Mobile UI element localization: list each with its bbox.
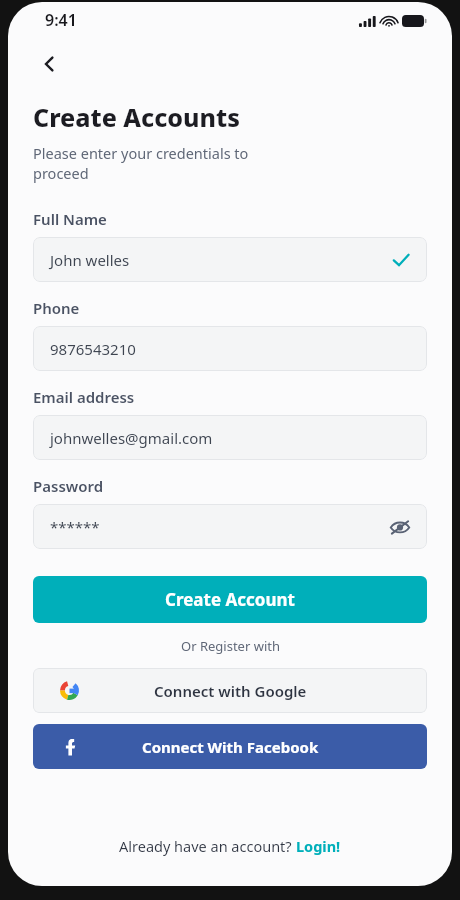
- button[interactable]: 9876543210: [33, 326, 427, 371]
- staticText: Already have an account?: [119, 836, 296, 856]
- staticText: Full Name: [33, 209, 107, 229]
- staticText: johnwelles@gmail.com: [50, 428, 213, 448]
- staticText: Or Register with: [181, 637, 280, 655]
- staticText: Phone: [33, 298, 80, 318]
- button[interactable]: johnwelles@gmail.com: [33, 415, 427, 460]
- staticText: Login!: [296, 836, 341, 856]
- button[interactable]: John welles: [33, 237, 427, 282]
- button[interactable]: ******: [33, 504, 427, 549]
- button[interactable]: Connect with Google: [33, 668, 427, 713]
- staticText: 9876543210: [50, 339, 136, 359]
- button[interactable]: Back: [28, 42, 72, 86]
- button[interactable]: Connect With Facebook: [33, 724, 427, 769]
- staticText: Email address: [33, 387, 135, 407]
- staticText: 9:41: [45, 9, 77, 31]
- button[interactable]: Show password: [389, 516, 411, 538]
- staticText: Password: [33, 476, 104, 496]
- staticText: Create Account: [165, 588, 295, 611]
- staticText: John welles: [50, 250, 130, 270]
- button[interactable]: Create Account: [33, 576, 427, 623]
- staticText: Create Accounts: [33, 100, 240, 134]
- staticText: Connect with Google: [154, 681, 307, 701]
- button[interactable]: Already have an account?: [119, 836, 341, 856]
- staticText: ******: [50, 517, 100, 537]
- staticText: Please enter your credentials to proceed: [33, 143, 249, 183]
- staticText: Connect With Facebook: [142, 737, 319, 757]
